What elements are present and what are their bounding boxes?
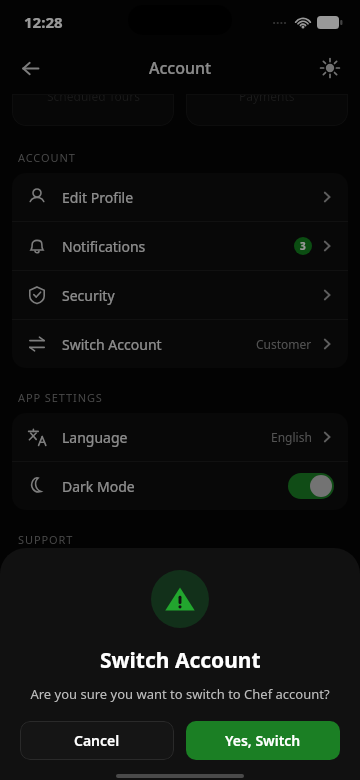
staticText: English xyxy=(271,429,312,445)
staticText: Language xyxy=(62,428,271,447)
staticText: Cancel xyxy=(74,731,120,750)
staticText: Switch Account xyxy=(62,335,256,354)
button[interactable]: Dark Mode xyxy=(12,462,348,510)
staticText: APP SETTINGS xyxy=(18,390,103,405)
button[interactable]: Help Center xyxy=(12,555,348,603)
button[interactable]: Notifications xyxy=(12,222,348,270)
button[interactable] xyxy=(288,473,334,499)
staticText: 3 xyxy=(300,239,306,253)
button[interactable]: Yes, Switch xyxy=(186,721,340,760)
staticText: Notifications xyxy=(62,237,294,256)
staticText: Customer xyxy=(256,336,312,352)
button[interactable]: Edit Profile xyxy=(12,173,348,221)
staticText: 12:28 xyxy=(24,12,63,32)
staticText: ACCOUNT xyxy=(18,150,76,165)
staticText: Edit Profile xyxy=(62,188,320,207)
staticText: Are you sure you want to switch to Chef … xyxy=(30,685,330,703)
staticText: Switch Account xyxy=(100,646,261,675)
staticText: Payments xyxy=(239,94,295,104)
staticText: Dark Mode xyxy=(62,477,288,496)
staticText: Help Center xyxy=(62,570,320,589)
staticText: Account xyxy=(149,57,212,79)
button[interactable]: Switch Account xyxy=(12,320,348,368)
staticText: Scheduled Tours xyxy=(47,94,140,104)
staticText: SUPPORT xyxy=(18,532,74,547)
staticText: Security xyxy=(62,286,320,305)
button[interactable]: Cancel xyxy=(20,721,174,760)
button[interactable]: Toggle brightness xyxy=(308,46,352,90)
staticText: Yes, Switch xyxy=(225,731,301,750)
button[interactable]: Back xyxy=(8,46,52,90)
button[interactable]: Security xyxy=(12,271,348,319)
button[interactable]: Language xyxy=(12,413,348,461)
